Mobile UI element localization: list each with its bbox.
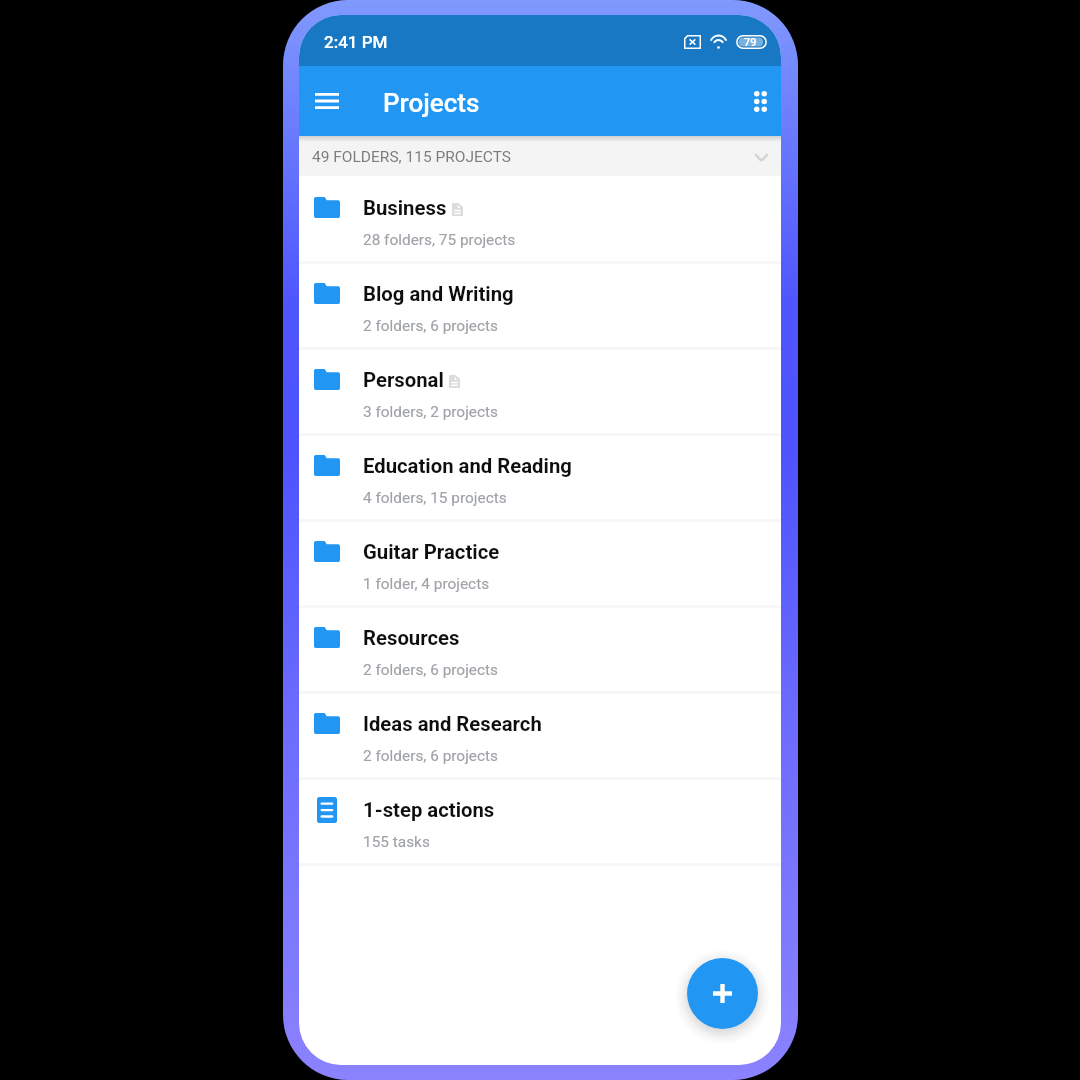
button[interactable]: Education and Reading	[299, 434, 781, 520]
staticText: 28 folders, 75 projects	[363, 231, 516, 249]
button[interactable]: 1-step actions	[299, 778, 781, 864]
staticText: 1-step actions	[363, 798, 495, 822]
staticText: 1 folder, 4 projects	[363, 575, 490, 593]
button[interactable]: Personal	[299, 348, 781, 434]
staticText: 3 folders, 2 projects	[363, 403, 499, 421]
staticText: 2:41 PM	[324, 32, 388, 52]
staticText: 49 FOLDERS, 115 PROJECTS	[312, 148, 512, 166]
button[interactable]: Guitar Practice	[299, 520, 781, 606]
staticText: 4 folders, 15 projects	[363, 489, 507, 507]
staticText: Projects	[383, 88, 480, 118]
staticText: 155 tasks	[363, 833, 430, 851]
staticText: 2 folders, 6 projects	[363, 747, 499, 765]
staticText: Education and Reading	[363, 454, 572, 478]
staticText: Blog and Writing	[363, 282, 514, 306]
button[interactable]: Ideas and Research	[299, 692, 781, 778]
button[interactable]: 49 FOLDERS, 115 PROJECTS	[299, 136, 781, 176]
button[interactable]: Business	[299, 176, 781, 262]
staticText: 2 folders, 6 projects	[363, 661, 499, 679]
button[interactable]: Open navigation menu	[302, 76, 352, 126]
staticText: Business	[363, 196, 447, 220]
button[interactable]: Resources	[299, 606, 781, 692]
button[interactable]: Add project	[687, 958, 758, 1029]
staticText: Personal	[363, 368, 444, 392]
staticText: 2 folders, 6 projects	[363, 317, 499, 335]
staticText: Resources	[363, 626, 460, 650]
button[interactable]: More apps	[737, 79, 781, 124]
button[interactable]: Blog and Writing	[299, 262, 781, 348]
staticText: Guitar Practice	[363, 540, 500, 564]
staticText: Ideas and Research	[363, 712, 542, 736]
staticText: 79	[744, 36, 757, 49]
